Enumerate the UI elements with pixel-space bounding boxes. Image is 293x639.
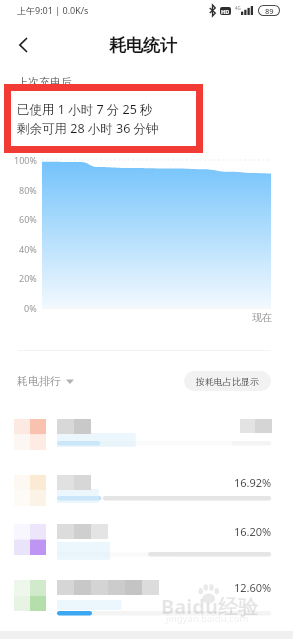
staticText: 上次充电后 xyxy=(17,75,72,89)
staticText: 20% xyxy=(19,272,37,284)
staticText: 剩余可用 28 小时 36 分钟 xyxy=(17,120,159,137)
staticText: 0% xyxy=(24,302,37,314)
button[interactable]: 16.20% xyxy=(0,510,293,565)
button[interactable]: Back xyxy=(6,28,40,62)
staticText: 上午9:01 | 0.0K/s xyxy=(17,4,89,16)
button[interactable] xyxy=(0,405,293,460)
staticText: 已使用 1 小时 7 分 25 秒 xyxy=(17,101,153,118)
staticText: 4G xyxy=(235,5,241,11)
staticText: 耗电统计 xyxy=(109,35,177,56)
staticText: 80% xyxy=(19,184,37,196)
staticText: Baidu经验 xyxy=(161,593,258,620)
staticText: HD xyxy=(221,8,230,15)
button[interactable]: 12.60% xyxy=(0,566,293,621)
button[interactable]: 16.92% xyxy=(0,461,293,516)
staticText: 按耗电占比显示 xyxy=(196,376,259,387)
staticText: 16.20% xyxy=(234,524,272,538)
staticText: 16.92% xyxy=(234,475,272,489)
button[interactable]: 按耗电占比显示 xyxy=(184,371,271,391)
staticText: 耗电排行 xyxy=(17,374,61,388)
staticText: 12.60% xyxy=(234,580,272,594)
staticText: 60% xyxy=(19,213,37,225)
staticText: 89 xyxy=(265,6,274,15)
button[interactable]: 耗电排行 xyxy=(17,374,74,388)
staticText: jingyan.baidu.com xyxy=(166,612,249,625)
staticText: 现在 xyxy=(252,311,272,324)
staticText: 100% xyxy=(14,154,37,166)
staticText: 40% xyxy=(19,243,37,255)
